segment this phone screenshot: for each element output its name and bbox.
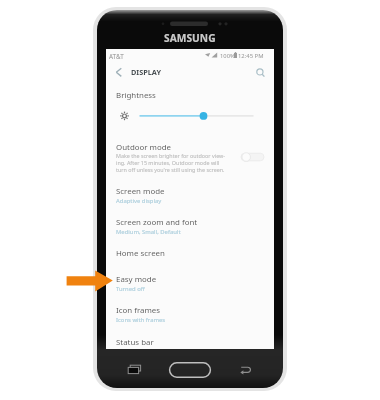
staticText: Easy mode	[116, 274, 157, 285]
button[interactable]: Easy mode	[106, 270, 274, 300]
button[interactable]: Search	[254, 63, 268, 79]
staticText: Brightness	[116, 90, 156, 101]
staticText: Adaptive display	[116, 197, 162, 205]
staticText: Make the screen brighter for outdoor vie…	[116, 152, 226, 173]
button[interactable]: Outdoor mode toggle	[241, 152, 264, 162]
staticText: Status bar	[116, 337, 154, 348]
button[interactable]: Status bar	[106, 333, 274, 349]
button[interactable]: Screen mode	[106, 182, 274, 212]
staticText: DISPLAY	[131, 67, 161, 77]
staticText: Icon frames	[116, 305, 161, 316]
other: Pointer arrow	[64, 268, 114, 292]
staticText: Home screen	[116, 248, 165, 259]
button[interactable]: Recent apps	[127, 364, 143, 376]
staticText: 12:45 PM	[238, 52, 264, 60]
staticText: Screen zoom and font	[116, 217, 198, 228]
staticText: Medium, Small, Default	[116, 228, 181, 236]
button[interactable]: Back	[111, 64, 125, 80]
staticText: Turned off	[116, 285, 145, 293]
staticText: Icons with frames	[116, 316, 166, 324]
staticText: Outdoor mode	[116, 142, 172, 153]
staticText: AT&T	[109, 52, 124, 61]
button[interactable]: Icon frames	[106, 300, 274, 331]
staticText: Screen mode	[116, 186, 165, 197]
staticText: SAMSUNG	[164, 31, 216, 45]
button[interactable]: Outdoor mode	[106, 128, 274, 178]
button[interactable]: Brightness	[106, 82, 274, 124]
staticText: 100%	[220, 52, 235, 60]
button[interactable]: Back	[239, 364, 253, 376]
button[interactable]: Screen zoom and font	[106, 213, 274, 244]
button[interactable]: Home	[168, 361, 212, 379]
button[interactable]: Home screen	[106, 245, 274, 270]
